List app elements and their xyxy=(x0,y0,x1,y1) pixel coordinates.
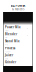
staticText: Power Mix xyxy=(5,25,21,29)
staticText: Grinder xyxy=(5,60,16,64)
button[interactable]: Power Mix xyxy=(3,25,32,32)
staticText: Mini xyxy=(5,37,7,38)
staticText: Blender xyxy=(5,32,17,36)
staticText: 1200W xyxy=(5,51,10,52)
staticText: Stand Mix xyxy=(5,39,20,43)
staticText: Process xyxy=(5,46,15,50)
staticText: Cold xyxy=(5,58,8,59)
staticText: ALL POWER xyxy=(10,4,25,7)
staticText: Steel xyxy=(5,30,8,31)
staticText: Pro xyxy=(5,44,8,45)
button[interactable]: Stand Mix xyxy=(3,39,32,46)
staticText: & MIXERS xyxy=(12,7,24,11)
button[interactable]: Juicer xyxy=(3,53,32,60)
button[interactable]: Grinder xyxy=(3,60,32,67)
button[interactable]: Blender xyxy=(3,32,32,39)
staticText: Juicer xyxy=(5,53,13,57)
button[interactable]: Process xyxy=(3,46,32,53)
